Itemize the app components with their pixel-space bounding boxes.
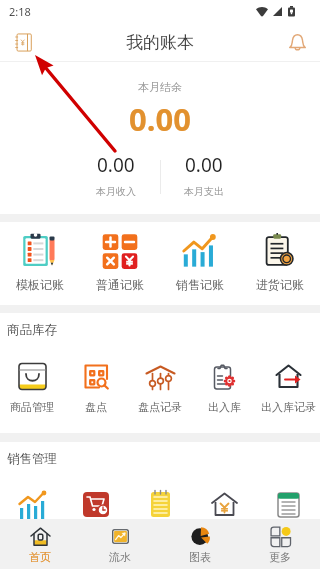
button[interactable]: 商品管理 — [0, 347, 64, 414]
staticText: 我的账本 — [126, 32, 194, 53]
staticText: 普通记账 — [96, 277, 144, 292]
button[interactable]: 图表 — [160, 519, 240, 569]
staticText: 本月结余 — [138, 80, 182, 94]
staticText: 0.00 — [185, 152, 223, 178]
button[interactable] — [128, 476, 192, 519]
staticText: 本月支出 — [184, 185, 224, 196]
staticText: 盘点 — [85, 400, 107, 414]
staticText: 0.00 — [129, 98, 191, 140]
staticText: 盘点记录 — [138, 400, 182, 414]
button[interactable]: 出入库记录 — [256, 347, 320, 414]
staticText: 本月收入 — [96, 185, 136, 196]
staticText: 销售管理 — [7, 451, 57, 467]
staticText: 模板记账 — [16, 277, 64, 292]
button[interactable] — [192, 476, 256, 519]
button[interactable]: 销售记账 — [160, 222, 240, 305]
button[interactable]: 流水 — [80, 519, 160, 569]
staticText: 出入库 — [208, 400, 241, 414]
staticText: 商品库存 — [7, 322, 57, 338]
staticText: 更多 — [269, 550, 291, 564]
button[interactable]: 盘点 — [64, 347, 128, 414]
staticText: 图表 — [189, 550, 211, 564]
button[interactable]: 更多 — [240, 519, 320, 569]
staticText: 2:18 — [9, 4, 31, 19]
button[interactable]: 模板记账 — [0, 222, 80, 305]
button[interactable]: 进货记账 — [240, 222, 320, 305]
button[interactable] — [0, 476, 64, 519]
staticText: 商品管理 — [10, 400, 54, 414]
button[interactable] — [256, 476, 320, 519]
button[interactable]: 首页 — [0, 519, 80, 569]
button[interactable] — [64, 476, 128, 519]
button[interactable]: 普通记账 — [80, 222, 160, 305]
staticText: 0.00 — [97, 152, 135, 178]
staticText: 首页 — [29, 550, 51, 564]
staticText: 出入库记录 — [261, 400, 316, 414]
staticText: 流水 — [109, 550, 131, 564]
button[interactable]: 出入库 — [192, 347, 256, 414]
button[interactable]: 通知 — [280, 25, 314, 59]
button[interactable]: 0.00 — [160, 152, 248, 196]
staticText: 进货记账 — [256, 277, 304, 292]
button[interactable]: 账本 — [6, 25, 40, 59]
button[interactable]: 盘点记录 — [128, 347, 192, 414]
staticText: 销售记账 — [176, 277, 224, 292]
button[interactable]: 0.00 — [72, 152, 160, 196]
